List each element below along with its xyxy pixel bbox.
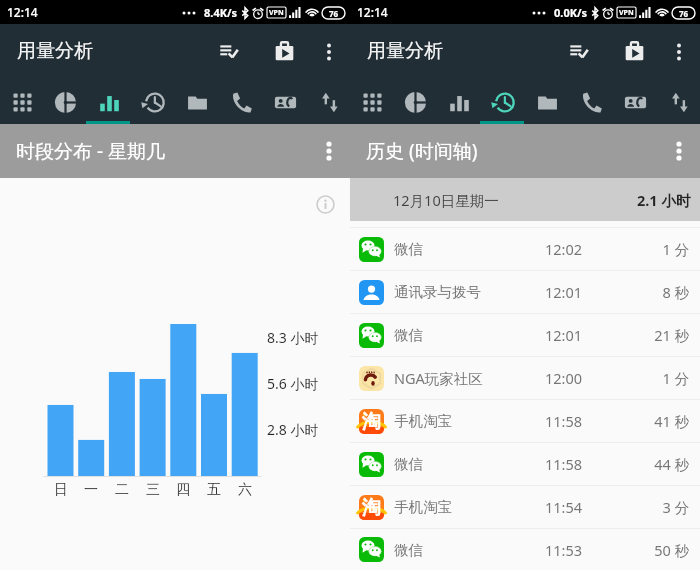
staticText: 三 [146,481,160,499]
staticText: 11:54 [545,497,583,517]
button[interactable]: Calls [568,78,612,124]
staticText: VPN [269,8,284,18]
staticText: 日 [54,481,68,499]
button[interactable]: More options [662,134,696,168]
staticText: 手机淘宝 [394,412,452,430]
button[interactable]: 微信 [350,529,700,570]
button[interactable]: History [130,78,174,124]
button[interactable]: Contacts [262,78,306,124]
staticText: 11:53 [545,540,583,560]
staticText: 六 [238,481,252,499]
button[interactable]: History [480,78,524,124]
staticText: 用量分析 [17,39,93,63]
button[interactable]: 淘 [350,486,700,528]
staticText: 12:00 [545,368,583,388]
staticText: 微信 [394,541,423,559]
staticText: 时段分布 - 星期几 [16,138,165,164]
staticText: 11:58 [545,454,583,474]
staticText: 21 秒 [654,325,689,345]
staticText: 用量分析 [367,39,443,63]
button[interactable]: Pie chart [43,78,86,124]
staticText: 12月10日星期一 [393,190,499,210]
staticText: 44 秒 [654,454,689,474]
button[interactable]: Calls [218,78,262,124]
staticText: 二 [115,481,129,499]
staticText: 2.1 小时 [637,190,691,210]
staticText: 0.0K/s [554,5,588,20]
staticText: 12:14 [357,4,388,20]
staticText: 12:02 [545,239,583,259]
staticText: 历史 (时间轴) [366,138,478,164]
button[interactable]: More options [660,33,697,70]
staticText: 8.4K/s [204,5,238,20]
button[interactable]: Sort list [211,33,248,70]
staticText: 淘 [362,410,381,434]
staticText: 3 分 [662,497,689,517]
button[interactable]: Sort list [561,33,598,70]
staticText: 50 秒 [654,540,689,560]
staticText: 12:01 [545,325,583,345]
button[interactable]: Play Store [266,33,303,70]
staticText: 微信 [394,455,423,473]
staticText: 淘 [362,496,381,520]
staticText: 8 秒 [662,282,689,302]
button[interactable]: 微信 [350,443,700,485]
button[interactable]: Info [315,194,335,214]
staticText: 12:01 [545,282,583,302]
button[interactable]: More options [312,134,346,168]
button[interactable]: NGA玩家社区 [350,357,700,399]
button[interactable]: Pie chart [393,78,436,124]
button[interactable]: Data transfer [306,78,350,124]
staticText: 手机淘宝 [394,498,452,516]
button[interactable]: Apps [0,78,43,124]
button[interactable]: 12月10日星期一 [350,178,700,221]
staticText: 8.3 小时 [267,328,319,347]
staticText: 5.6 小时 [267,374,319,393]
button[interactable]: Bar chart [86,78,130,124]
staticText: 11:58 [545,411,583,431]
button[interactable]: Data transfer [656,78,700,124]
button[interactable]: Contacts [612,78,656,124]
staticText: 76 [329,8,339,19]
staticText: 1 分 [662,239,689,259]
staticText: 通讯录与拨号 [394,283,481,301]
staticText: 微信 [394,326,423,344]
staticText: 微信 [394,240,423,258]
button[interactable]: Files [524,78,568,124]
staticText: 1 分 [662,368,689,388]
staticText: NGA玩家社区 [394,368,483,388]
button[interactable]: Play Store [616,33,653,70]
staticText: 12:14 [7,4,38,20]
button[interactable]: Apps [350,78,393,124]
button[interactable]: 通讯录与拨号 [350,271,700,313]
staticText: 76 [679,8,689,19]
staticText: 一 [84,481,98,499]
button[interactable]: 淘 [350,400,700,442]
staticText: 四 [176,481,190,499]
button[interactable]: 微信 [350,314,700,356]
staticText: 2.8 小时 [267,420,319,439]
staticText: 41 秒 [654,411,689,431]
staticText: VPN [619,8,634,18]
button[interactable]: Files [174,78,218,124]
button[interactable]: Bar chart [436,78,480,124]
button[interactable]: 微信 [350,228,700,270]
staticText: 五 [207,481,221,499]
button[interactable]: More options [310,33,347,70]
